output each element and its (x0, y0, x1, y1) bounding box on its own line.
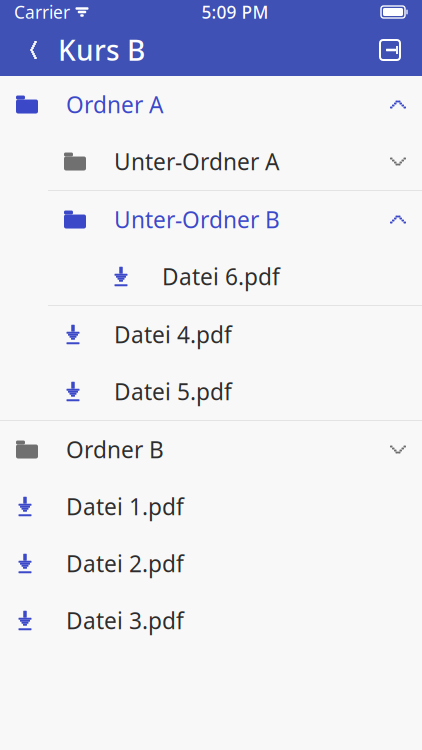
staticText: Carrier (14, 0, 70, 23)
staticText: Ordner B (66, 434, 164, 464)
staticText: Datei 2.pdf (66, 548, 184, 578)
staticText: Datei 1.pdf (66, 491, 184, 521)
button[interactable]: Datei 1.pdf (0, 478, 422, 535)
staticText: Datei 6.pdf (162, 261, 280, 291)
button[interactable]: Ordner B (0, 421, 422, 478)
button[interactable]: Datei 5.pdf (0, 363, 422, 420)
staticText: Unter-Ordner A (114, 146, 279, 176)
staticText: Ordner A (66, 89, 163, 119)
staticText: Kurs B (58, 31, 145, 69)
button[interactable]: Ordner A (0, 76, 422, 133)
button[interactable]: Datei 3.pdf (0, 592, 422, 649)
button[interactable]: Unter-Ordner A (0, 133, 422, 190)
staticText: Unter-Ordner B (114, 204, 280, 234)
staticText: Datei 4.pdf (114, 319, 232, 349)
button[interactable]: Log out (368, 26, 412, 74)
button[interactable]: Back (10, 26, 54, 74)
staticText: 5:09 PM (201, 0, 268, 23)
button[interactable]: Datei 2.pdf (0, 535, 422, 592)
staticText: Datei 5.pdf (114, 376, 232, 406)
button[interactable]: Unter-Ordner B (0, 191, 422, 248)
button[interactable]: Datei 4.pdf (0, 306, 422, 363)
button[interactable]: Datei 6.pdf (0, 248, 422, 305)
staticText: Datei 3.pdf (66, 605, 184, 635)
